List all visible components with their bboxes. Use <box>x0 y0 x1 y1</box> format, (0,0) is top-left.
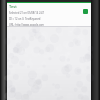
button[interactable]: Status indicator: active <box>83 9 88 14</box>
staticText: Test <box>9 4 17 9</box>
staticText: Selected 21 on 05/08/14 2:47 <box>9 11 59 15</box>
staticText: ID = 12 on 3: TestKeyword <box>9 17 49 21</box>
staticText: URL: http://www.google.com <box>9 23 55 26</box>
button[interactable]: Test <box>7 3 91 26</box>
